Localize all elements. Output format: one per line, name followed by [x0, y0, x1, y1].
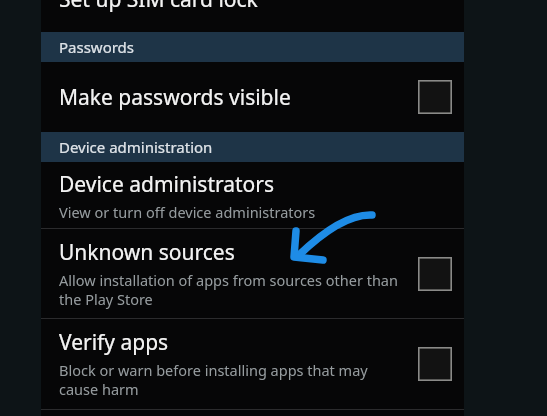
button[interactable]: Unknown sources — [41, 229, 464, 318]
staticText: View or turn off device administrators — [59, 202, 316, 222]
button[interactable]: Set up SIM card lock — [41, 0, 464, 32]
button[interactable]: Toggle setting checkbox — [418, 347, 452, 381]
staticText: Device administrators — [59, 170, 275, 199]
button[interactable]: Make passwords visible — [41, 62, 464, 132]
staticText: Block or warn before installing apps tha… — [59, 360, 409, 399]
staticText: Set up SIM card lock — [59, 0, 258, 14]
button[interactable]: Toggle setting checkbox — [418, 80, 452, 114]
staticText: Verify apps — [59, 328, 169, 357]
staticText: Make passwords visible — [59, 83, 291, 112]
staticText: Passwords — [59, 37, 135, 57]
staticText: Device administration — [59, 137, 213, 157]
staticText: Allow installation of apps from sources … — [59, 270, 409, 309]
button[interactable]: Device administrators — [41, 162, 464, 228]
button[interactable]: Verify apps — [41, 319, 464, 409]
staticText: Unknown sources — [59, 238, 235, 267]
button[interactable]: Toggle setting checkbox — [418, 257, 452, 291]
